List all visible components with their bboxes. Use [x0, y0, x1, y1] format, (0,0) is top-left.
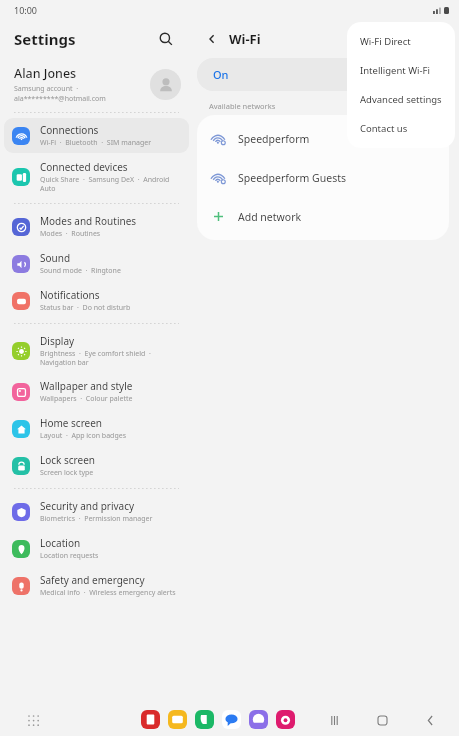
- button[interactable]: Advanced settings: [347, 85, 455, 114]
- staticText: Add network: [238, 210, 302, 224]
- staticText: Biometrics · Permission manager: [40, 514, 153, 524]
- button[interactable]: Intelligent Wi-Fi: [347, 56, 455, 85]
- staticText: Intelligent Wi-Fi: [360, 64, 430, 77]
- staticText: Wi-Fi: [229, 30, 261, 48]
- staticText: Security and privacy: [40, 499, 135, 513]
- button[interactable]: Location: [4, 531, 189, 566]
- staticText: Notifications: [40, 288, 100, 302]
- button[interactable]: Home: [371, 709, 393, 731]
- staticText: Speedperform Guests: [238, 171, 346, 185]
- button[interactable]: Connections: [4, 118, 189, 153]
- button[interactable]: Speedperform: [197, 119, 449, 158]
- staticText: Available networks: [209, 101, 276, 111]
- staticText: Location: [40, 536, 81, 550]
- staticText: Medical info · Wireless emergency alerts: [40, 588, 176, 598]
- button[interactable]: Speedperform Guests: [197, 158, 449, 197]
- staticText: ala*********@hotmail.com: [14, 94, 106, 104]
- staticText: Safety and emergency: [40, 573, 145, 587]
- button[interactable]: On: [197, 58, 449, 91]
- staticText: Location requests: [40, 551, 99, 561]
- staticText: Wi-Fi · Bluetooth · SIM manager: [40, 138, 152, 148]
- staticText: Connections: [40, 123, 99, 137]
- staticText: Sound mode · Ringtone: [40, 266, 121, 276]
- staticText: Alan Jones: [14, 65, 77, 82]
- staticText: On: [213, 67, 229, 82]
- staticText: Status bar · Do not disturb: [40, 303, 131, 313]
- button[interactable]: Safety and emergency: [4, 568, 189, 603]
- button[interactable]: Lock screen: [4, 448, 189, 483]
- button[interactable]: My Files: [168, 710, 187, 729]
- staticText: Modes · Routines: [40, 229, 101, 239]
- staticText: Quick Share · Samsung DeX · Android Auto: [40, 175, 181, 193]
- staticText: Wallpapers · Colour palette: [40, 394, 133, 404]
- button[interactable]: Office: [141, 710, 160, 729]
- button[interactable]: Display: [4, 329, 189, 372]
- button[interactable]: Messages: [222, 710, 241, 729]
- staticText: Lock screen: [40, 453, 96, 467]
- staticText: Brightness · Eye comfort shield · Naviga…: [40, 349, 181, 367]
- staticText: Wi-Fi Direct: [360, 35, 411, 48]
- staticText: Layout · App icon badges: [40, 431, 127, 441]
- staticText: Screen lock type: [40, 468, 94, 478]
- staticText: Advanced settings: [360, 93, 442, 106]
- staticText: Wallpaper and style: [40, 379, 133, 393]
- staticText: Connected devices: [40, 160, 128, 174]
- staticText: Speedperform: [238, 132, 310, 146]
- button[interactable]: Sound: [4, 246, 189, 281]
- staticText: Settings: [14, 29, 76, 49]
- button[interactable]: Apps: [22, 709, 44, 731]
- button[interactable]: Connected devices: [4, 155, 189, 198]
- button[interactable]: Contact us: [347, 114, 455, 143]
- staticText: Samsung account ·: [14, 84, 79, 94]
- button[interactable]: Wi-Fi Direct: [347, 27, 455, 56]
- button[interactable]: Back: [201, 28, 223, 50]
- staticText: 10:00: [14, 4, 38, 16]
- button[interactable]: Internet: [249, 710, 268, 729]
- button[interactable]: Modes and Routines: [4, 209, 189, 244]
- staticText: Contact us: [360, 122, 408, 135]
- button[interactable]: Security and privacy: [4, 494, 189, 529]
- button[interactable]: Wallpaper and style: [4, 374, 189, 409]
- button[interactable]: Back: [419, 709, 441, 731]
- button[interactable]: Search settings: [153, 26, 179, 52]
- staticText: Modes and Routines: [40, 214, 137, 228]
- button[interactable]: Home screen: [4, 411, 189, 446]
- staticText: Sound: [40, 251, 71, 265]
- button[interactable]: Add network: [197, 197, 449, 236]
- button[interactable]: Alan Jones: [0, 58, 193, 110]
- button[interactable]: Notifications: [4, 283, 189, 318]
- staticText: Display: [40, 334, 75, 348]
- button[interactable]: Camera: [276, 710, 295, 729]
- button[interactable]: Phone: [195, 710, 214, 729]
- staticText: Home screen: [40, 416, 103, 430]
- button[interactable]: Recent apps: [323, 709, 345, 731]
